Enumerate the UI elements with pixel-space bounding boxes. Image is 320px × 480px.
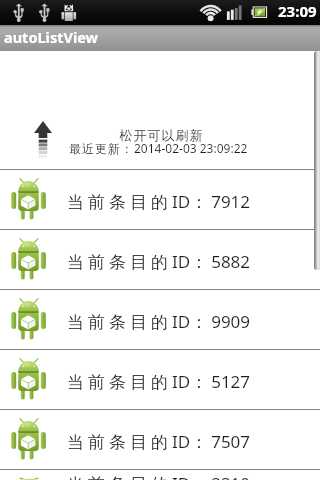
- staticText: autoListView: [4, 27, 99, 47]
- staticText: 当前条目的ID：5127: [67, 370, 251, 393]
- staticText: 当前条目的ID：3310: [67, 472, 251, 480]
- button[interactable]: 当前条目的ID：7507: [0, 410, 320, 469]
- staticText: 当前条目的ID：7507: [67, 430, 251, 453]
- staticText: 当前条目的ID：7912: [67, 190, 251, 213]
- button[interactable]: 当前条目的ID：7912: [0, 170, 320, 229]
- staticText: 最近更新：2014-02-03 23:09:22: [69, 140, 248, 156]
- staticText: 当前条目的ID：9909: [67, 310, 251, 333]
- staticText: 23:09: [278, 1, 317, 21]
- button[interactable]: 当前条目的ID：5882: [0, 230, 320, 289]
- staticText: 松开可以刷新: [119, 127, 203, 143]
- button[interactable]: 当前条目的ID：3310: [0, 470, 320, 480]
- button[interactable]: 当前条目的ID：9909: [0, 290, 320, 349]
- staticText: 当前条目的ID：5882: [67, 250, 251, 273]
- button[interactable]: Pull to refresh: [0, 51, 320, 169]
- other: Pull to refresh: [34, 121, 52, 158]
- button[interactable]: 当前条目的ID：5127: [0, 350, 320, 409]
